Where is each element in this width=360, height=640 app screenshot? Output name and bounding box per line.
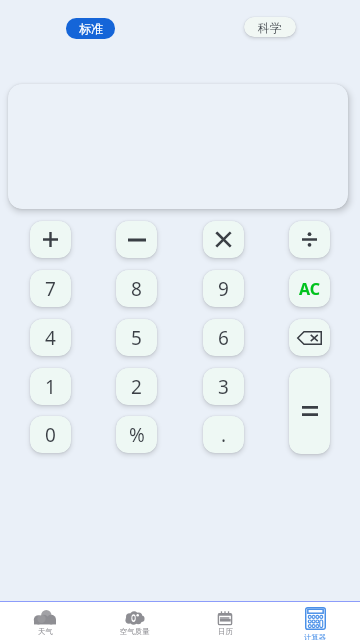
button[interactable]: Backspace <box>289 319 330 356</box>
staticText: 天气 <box>38 627 53 636</box>
button[interactable]: 2 <box>116 368 157 405</box>
button[interactable]: Plus <box>30 221 71 258</box>
button[interactable]: 天气 <box>0 602 90 640</box>
button[interactable]: 空气质量 <box>90 602 180 640</box>
button[interactable]: 6 <box>203 319 244 356</box>
button[interactable]: % <box>116 416 157 453</box>
staticText: 空气质量 <box>120 627 150 636</box>
staticText: 1 <box>45 374 56 400</box>
staticText: 5 <box>131 325 142 351</box>
staticText: 计算器 <box>304 633 327 640</box>
staticText: 2 <box>131 374 142 400</box>
button[interactable]: 9 <box>203 270 244 307</box>
staticText: 9 <box>218 276 229 302</box>
button[interactable]: 0 <box>30 416 71 453</box>
button[interactable]: 计算器 <box>270 602 360 640</box>
staticText: 3 <box>218 374 229 400</box>
button[interactable]: . <box>203 416 244 453</box>
button[interactable]: AC <box>289 270 330 307</box>
button[interactable]: Minus <box>116 221 157 258</box>
button[interactable]: Divide <box>289 221 330 258</box>
button[interactable]: Equals <box>289 368 330 454</box>
button[interactable]: 科学 <box>244 17 296 37</box>
button[interactable]: 1 <box>30 368 71 405</box>
staticText: 日历 <box>218 627 233 636</box>
button[interactable]: 4 <box>30 319 71 356</box>
staticText: 标准 <box>79 21 103 36</box>
staticText: 科学 <box>258 20 282 35</box>
button[interactable]: 3 <box>203 368 244 405</box>
button[interactable]: 8 <box>116 270 157 307</box>
staticText: 6 <box>218 325 229 351</box>
staticText: % <box>129 422 145 448</box>
button[interactable]: 5 <box>116 319 157 356</box>
staticText: 7 <box>45 276 56 302</box>
button[interactable]: 标准 <box>66 18 115 39</box>
button[interactable]: 日历 <box>180 602 270 640</box>
staticText: 8 <box>131 276 142 302</box>
staticText: 4 <box>45 325 56 351</box>
button[interactable]: Multiply <box>203 221 244 258</box>
staticText: 0 <box>45 422 56 448</box>
button[interactable]: 7 <box>30 270 71 307</box>
staticText: AC <box>299 278 321 300</box>
staticText: . <box>221 422 227 448</box>
